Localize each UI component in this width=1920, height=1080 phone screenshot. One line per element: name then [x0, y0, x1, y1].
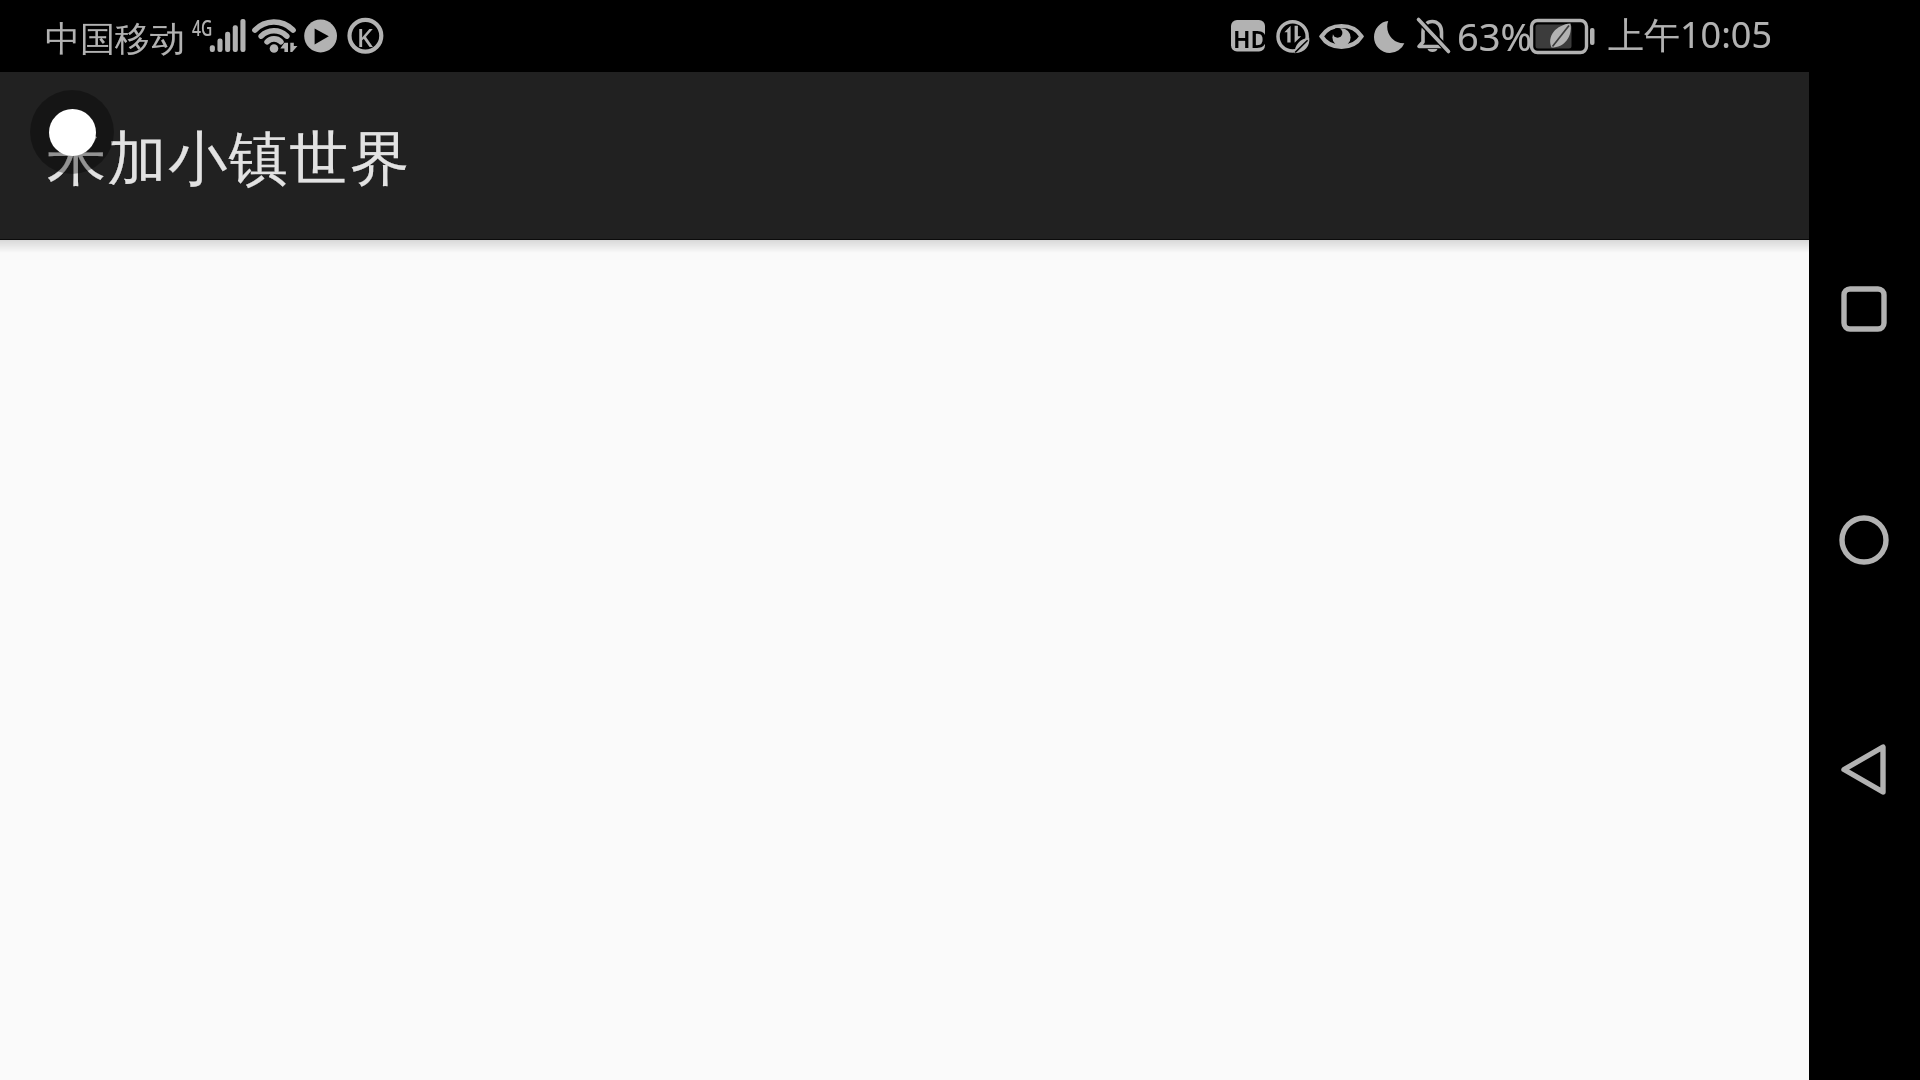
staticText: 上午10:05	[1608, 10, 1773, 59]
button[interactable]: Recents	[1818, 263, 1909, 354]
button[interactable]: Home	[1818, 494, 1909, 585]
button[interactable]: Loading	[30, 90, 114, 174]
button[interactable]: Back	[1818, 724, 1909, 815]
staticText: 中国移动	[45, 17, 185, 61]
staticText: K	[357, 20, 373, 54]
staticText: 米加小镇世界	[47, 122, 411, 196]
staticText: 63%	[1457, 10, 1533, 62]
staticText: HD	[1233, 23, 1268, 54]
staticText: 4G	[192, 13, 213, 43]
